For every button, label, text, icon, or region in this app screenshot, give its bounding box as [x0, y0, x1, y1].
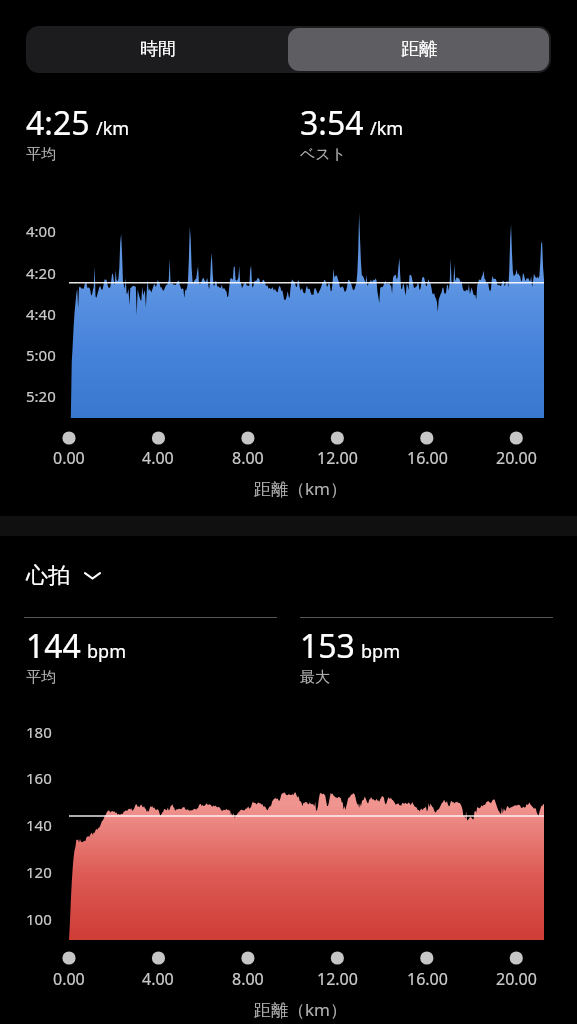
staticText: 4.00: [142, 447, 174, 469]
staticText: 4:40: [26, 304, 56, 324]
staticText: 距離: [401, 38, 437, 61]
staticText: 3:54: [300, 101, 364, 145]
staticText: 8.00: [232, 968, 264, 990]
staticText: 153: [300, 624, 355, 668]
button[interactable]: 心拍: [26, 562, 101, 590]
staticText: 平均: [26, 145, 56, 164]
staticText: 12.00: [317, 447, 358, 469]
staticText: 時間: [140, 38, 176, 61]
staticText: 平均: [26, 668, 56, 687]
staticText: 5:00: [26, 345, 56, 365]
staticText: 4:20: [26, 263, 56, 283]
staticText: /km: [370, 116, 404, 141]
staticText: 最大: [300, 668, 330, 687]
staticText: 0.00: [53, 447, 85, 469]
staticText: 160: [26, 768, 52, 788]
staticText: 144: [26, 624, 81, 668]
staticText: bpm: [361, 639, 400, 664]
staticText: 8.00: [232, 447, 264, 469]
button[interactable]: 時間: [28, 28, 288, 71]
staticText: ベスト: [300, 145, 347, 164]
staticText: 120: [26, 862, 52, 882]
staticText: 心拍: [26, 562, 70, 590]
staticText: 20.00: [496, 968, 537, 990]
staticText: 0.00: [53, 968, 85, 990]
staticText: 4:00: [26, 221, 56, 241]
button[interactable]: 距離: [288, 28, 549, 71]
staticText: 180: [26, 722, 52, 742]
staticText: bpm: [87, 639, 126, 664]
staticText: 5:20: [26, 386, 56, 406]
staticText: 16.00: [407, 968, 448, 990]
staticText: 距離（km）: [254, 998, 347, 1021]
staticText: 20.00: [496, 447, 537, 469]
staticText: 140: [26, 815, 52, 835]
staticText: 4:25: [26, 101, 90, 145]
staticText: 100: [26, 909, 52, 929]
staticText: 16.00: [407, 447, 448, 469]
staticText: 12.00: [317, 968, 358, 990]
staticText: /km: [96, 116, 130, 141]
other: Expand heart rate: [84, 568, 101, 585]
staticText: 距離（km）: [254, 477, 347, 500]
staticText: 4.00: [142, 968, 174, 990]
